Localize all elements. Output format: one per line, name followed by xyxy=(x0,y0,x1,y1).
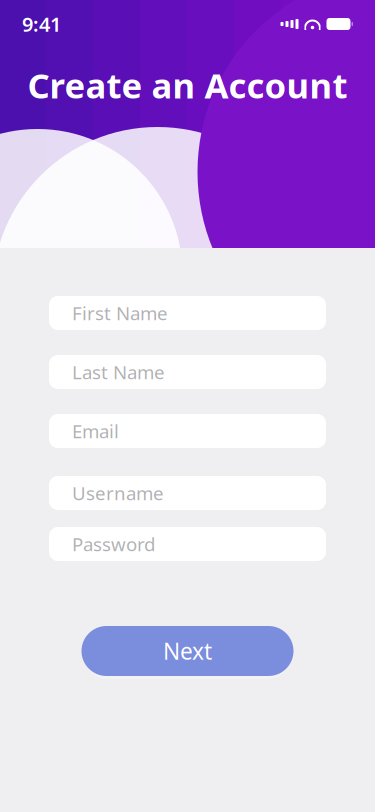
button[interactable]: First Name xyxy=(49,296,326,330)
button[interactable]: Email xyxy=(49,414,326,448)
button[interactable]: Username xyxy=(49,476,326,510)
staticText: Username xyxy=(72,481,164,505)
button[interactable]: Password xyxy=(49,527,326,561)
staticText: 9:41 xyxy=(22,11,61,37)
staticText: Password xyxy=(72,532,155,556)
staticText: First Name xyxy=(72,301,168,325)
button[interactable]: Last Name xyxy=(49,355,326,389)
staticText: Next xyxy=(163,636,212,666)
button[interactable]: Next xyxy=(49,622,326,680)
staticText: Create an Account xyxy=(27,62,347,108)
staticText: Email xyxy=(72,419,119,443)
staticText: Last Name xyxy=(72,360,165,384)
